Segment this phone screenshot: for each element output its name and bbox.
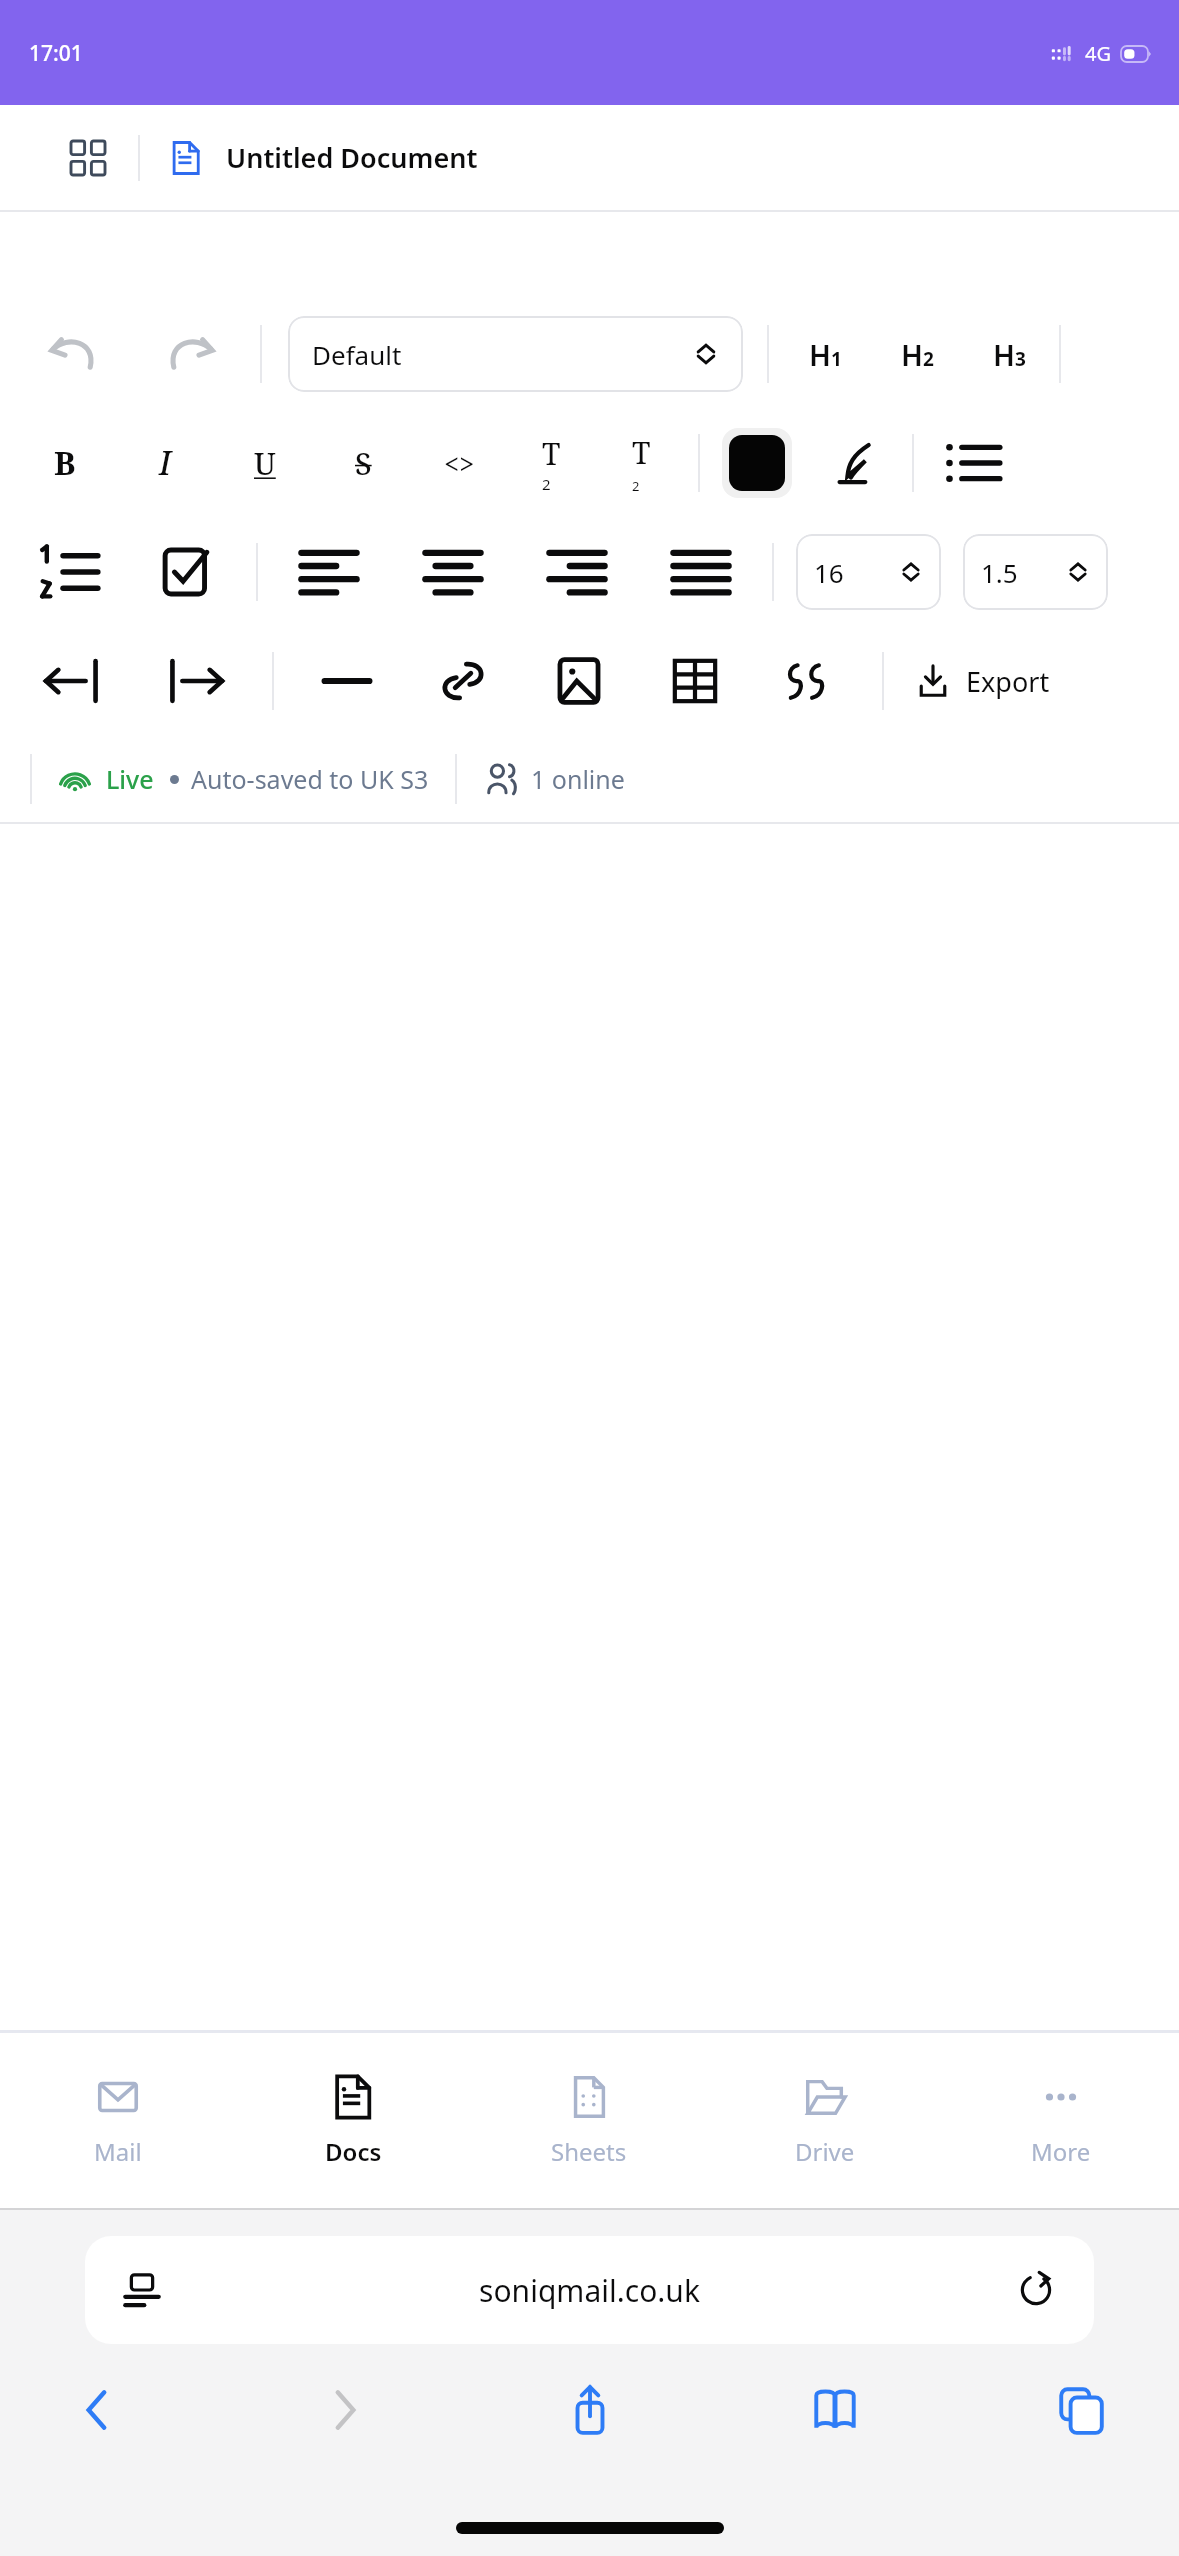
button[interactable]: H [871, 317, 963, 391]
button[interactable]: Text colour [722, 428, 792, 498]
staticText: U [254, 443, 276, 484]
staticText: 1 online [531, 762, 625, 796]
staticText: I [159, 441, 172, 485]
button[interactable]: Mail [0, 2033, 235, 2208]
button[interactable]: Back [50, 2370, 146, 2470]
staticText: soniqmail.co.uk [479, 2270, 700, 2311]
button[interactable]: Redo [156, 317, 230, 391]
button[interactable]: Undo [34, 317, 108, 391]
button[interactable]: Superscript [520, 422, 582, 504]
staticText: 3 [1015, 346, 1026, 372]
staticText: Untitled Document [226, 139, 478, 176]
staticText: 1.5 [981, 555, 1018, 590]
staticText: Default [312, 337, 402, 372]
staticText: Docs [325, 2135, 382, 2168]
staticText: B [54, 441, 76, 485]
staticText: 16 [814, 555, 844, 590]
button[interactable]: <> [428, 432, 490, 494]
button[interactable]: Share [542, 2370, 638, 2470]
staticText: Sheets [551, 2135, 627, 2168]
button[interactable]: H [963, 317, 1055, 391]
other: Page settings [123, 2271, 161, 2309]
staticText: 4G [1085, 40, 1111, 67]
button[interactable]: Align centre [416, 535, 490, 609]
staticText: T [632, 432, 651, 473]
staticText: 2 [632, 477, 640, 495]
button[interactable]: Link [428, 646, 498, 716]
button[interactable]: Insert table [660, 646, 730, 716]
button[interactable]: Numbered list [34, 536, 106, 608]
staticText: H [993, 335, 1015, 374]
button[interactable]: H [779, 317, 871, 391]
button[interactable]: Indent [158, 643, 234, 719]
button[interactable]: Docs [235, 2033, 471, 2208]
button[interactable]: S [332, 432, 394, 494]
button[interactable]: Checklist [150, 536, 222, 608]
button[interactable]: Sheets [471, 2033, 707, 2208]
button[interactable]: Export [908, 646, 1054, 716]
button[interactable]: More [943, 2033, 1179, 2208]
staticText: 1 [831, 346, 842, 372]
button[interactable]: Bulleted list [938, 428, 1008, 498]
button[interactable]: Page settings [85, 2236, 1094, 2344]
button[interactable]: B [34, 432, 96, 494]
button[interactable]: I [134, 432, 196, 494]
button[interactable]: Tabs [1033, 2370, 1129, 2470]
button[interactable]: Insert image [544, 646, 614, 716]
button[interactable]: Align right [540, 535, 614, 609]
staticText: 2 [542, 474, 551, 494]
other: Reload [1016, 2270, 1056, 2310]
staticText: More [1031, 2135, 1091, 2168]
button[interactable]: Subscript [610, 422, 672, 504]
button[interactable]: 1.5 [963, 534, 1108, 610]
button[interactable]: Default [288, 316, 743, 392]
button[interactable]: Highlight [818, 428, 888, 498]
button[interactable]: 16 [796, 534, 941, 610]
staticText: Mail [94, 2135, 142, 2168]
staticText: 17:01 [29, 39, 83, 68]
button[interactable]: Outdent [34, 643, 110, 719]
staticText: Export [966, 663, 1050, 700]
button[interactable]: Quote [776, 646, 846, 716]
button[interactable]: Horizontal rule [312, 646, 382, 716]
staticText: Auto-saved to UK S3 [191, 762, 429, 796]
staticText: S [355, 443, 372, 484]
staticText: Drive [795, 2135, 855, 2168]
button[interactable]: U [234, 432, 296, 494]
staticText: 2 [923, 346, 934, 372]
button[interactable]: Align left [292, 535, 366, 609]
staticText: H [809, 335, 831, 374]
button[interactable]: Justify [664, 535, 738, 609]
staticText: T [542, 433, 561, 474]
staticText: H [901, 335, 923, 374]
button[interactable]: Apps [62, 132, 114, 184]
staticText: Live [106, 762, 154, 796]
button[interactable]: Drive [707, 2033, 943, 2208]
button[interactable]: Forward [296, 2370, 392, 2470]
button[interactable]: Bookmarks [787, 2370, 883, 2470]
staticText: <> [444, 445, 475, 482]
